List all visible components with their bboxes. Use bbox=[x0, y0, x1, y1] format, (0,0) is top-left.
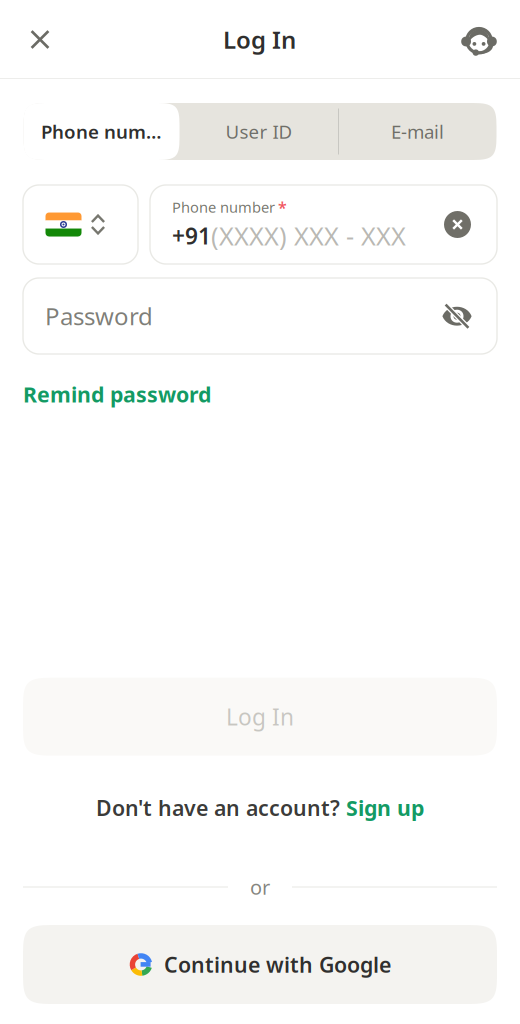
staticText: User ID bbox=[225, 119, 292, 144]
button[interactable]: Close bbox=[14, 9, 66, 69]
staticText: Don't have an account? bbox=[96, 794, 340, 822]
button[interactable]: Customer support bbox=[453, 9, 505, 69]
staticText: Sign up bbox=[346, 794, 424, 822]
button[interactable]: Country code, India, plus 91 bbox=[23, 185, 138, 264]
staticText: E-mail bbox=[391, 119, 444, 144]
button[interactable]: Phone num… bbox=[23, 103, 179, 160]
button[interactable]: Log In bbox=[23, 678, 497, 756]
button[interactable]: Show password bbox=[441, 303, 473, 329]
button[interactable]: E-mail bbox=[338, 103, 496, 160]
button[interactable]: Clear phone number bbox=[444, 211, 471, 238]
staticText: or bbox=[250, 874, 270, 900]
button[interactable]: Continue with Google bbox=[23, 925, 497, 1004]
button[interactable]: Sign up bbox=[346, 794, 424, 822]
staticText: Password bbox=[45, 300, 153, 332]
button[interactable]: User ID bbox=[179, 103, 338, 160]
staticText: Log In bbox=[223, 24, 296, 55]
staticText: Phone num… bbox=[41, 119, 162, 144]
staticText: Continue with Google bbox=[164, 950, 391, 979]
staticText: (XXXX) XXX - XXX bbox=[211, 219, 406, 252]
staticText: +91 bbox=[172, 221, 211, 251]
staticText: Log In bbox=[226, 702, 294, 732]
button[interactable]: Remind password bbox=[23, 380, 211, 408]
staticText: * bbox=[278, 197, 287, 218]
staticText: Phone number bbox=[172, 197, 275, 217]
staticText: Remind password bbox=[23, 380, 211, 408]
